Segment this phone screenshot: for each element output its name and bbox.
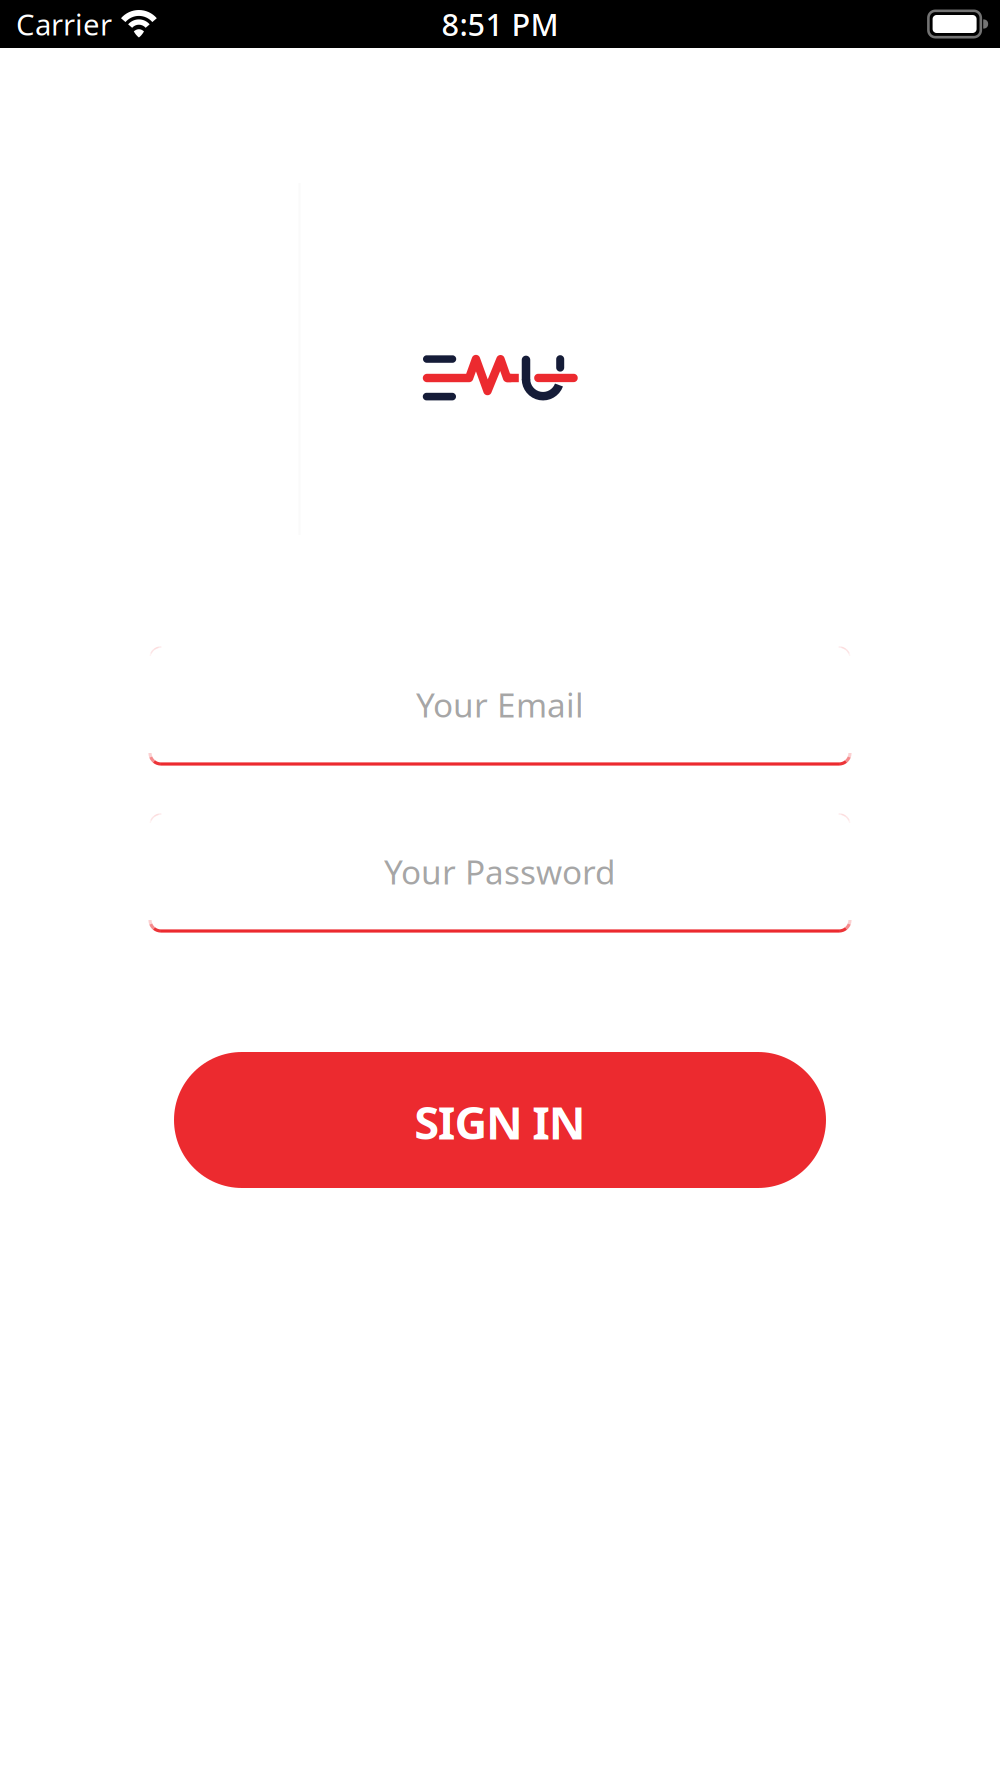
staticText: SIGN IN	[414, 1092, 586, 1152]
button[interactable]: Your Password	[150, 814, 850, 931]
staticText: Your Email	[416, 682, 584, 727]
staticText: 8:51 PM	[441, 4, 558, 44]
staticText: Your Password	[384, 849, 616, 894]
button[interactable]: Your Email	[150, 647, 850, 764]
button[interactable]: SIGN IN	[174, 1052, 826, 1188]
staticText: Carrier	[16, 4, 112, 43]
